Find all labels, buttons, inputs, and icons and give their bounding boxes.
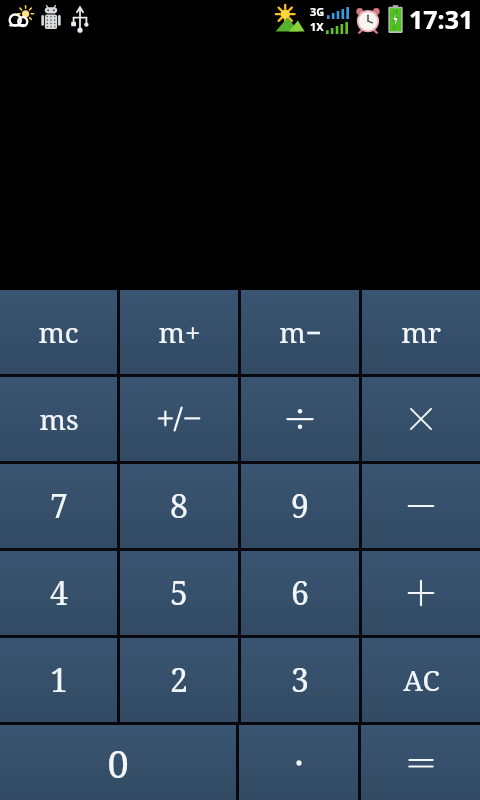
button[interactable]: ms xyxy=(0,377,117,461)
staticText: 17:31 xyxy=(409,2,474,36)
staticText: ms xyxy=(39,400,79,438)
button[interactable]: 8 xyxy=(120,464,238,548)
button[interactable]: Decimal point xyxy=(239,725,358,800)
button[interactable]: mc xyxy=(0,290,117,374)
button[interactable]: AC xyxy=(362,638,480,722)
button[interactable]: 5 xyxy=(120,551,238,635)
staticText: 5 xyxy=(170,571,188,615)
staticText: 1X xyxy=(310,19,324,34)
button[interactable]: Minus xyxy=(362,464,480,548)
button[interactable]: 4 xyxy=(0,551,117,635)
staticText: AC xyxy=(403,661,440,699)
button[interactable]: 6 xyxy=(241,551,359,635)
staticText: mc xyxy=(38,313,79,351)
button[interactable]: 9 xyxy=(241,464,359,548)
button[interactable]: Plus minus xyxy=(120,377,238,461)
staticText: 0 xyxy=(107,737,129,789)
button[interactable]: Plus xyxy=(362,551,480,635)
button[interactable]: m+ xyxy=(120,290,238,374)
staticText: 3G xyxy=(310,4,325,19)
button[interactable]: mr xyxy=(362,290,480,374)
button[interactable]: Multiply xyxy=(362,377,480,461)
staticText: m− xyxy=(279,313,322,351)
button[interactable]: Divide xyxy=(241,377,359,461)
staticText: 1 xyxy=(50,658,68,702)
button[interactable]: Equals xyxy=(361,725,480,800)
button[interactable]: 2 xyxy=(120,638,238,722)
staticText: 3 xyxy=(291,658,309,702)
button[interactable]: m− xyxy=(241,290,359,374)
staticText: 7 xyxy=(50,484,68,528)
staticText: 8 xyxy=(170,484,188,528)
button[interactable]: 7 xyxy=(0,464,117,548)
button[interactable]: 3 xyxy=(241,638,359,722)
staticText: 2 xyxy=(170,658,188,702)
button[interactable]: 0 xyxy=(0,725,236,800)
staticText: 4 xyxy=(50,571,68,615)
button[interactable]: 1 xyxy=(0,638,117,722)
staticText: 6 xyxy=(291,571,309,615)
staticText: 9 xyxy=(291,484,309,528)
staticText: m+ xyxy=(158,313,201,351)
staticText: mr xyxy=(401,313,441,351)
